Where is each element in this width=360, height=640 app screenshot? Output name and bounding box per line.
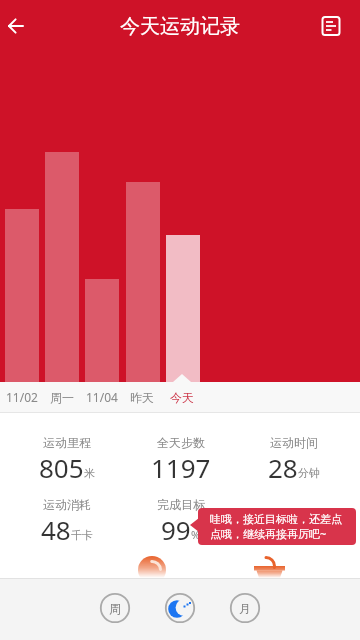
- staticText: 805: [39, 450, 84, 485]
- staticText: 11/04: [86, 389, 118, 405]
- staticText: 周: [109, 601, 121, 616]
- staticText: 今天: [170, 390, 194, 405]
- staticText: 分钟: [298, 466, 320, 480]
- staticText: 全天步数: [157, 435, 205, 450]
- staticText: 11/02: [6, 389, 38, 405]
- staticText: 48: [41, 512, 71, 547]
- button[interactable]: 11/04: [82, 382, 122, 412]
- staticText: 哇哦，接近目标啦，还差点: [210, 512, 342, 526]
- button[interactable]: 11/02: [2, 382, 42, 412]
- staticText: 点哦，继续再接再厉吧~: [210, 526, 327, 541]
- staticText: 周一: [50, 390, 74, 405]
- staticText: 今天运动记录: [120, 14, 240, 39]
- staticText: 运动消耗: [43, 497, 91, 512]
- button[interactable]: [314, 10, 348, 42]
- staticText: 昨天: [130, 390, 154, 405]
- staticText: 米: [84, 466, 95, 480]
- button[interactable]: 周: [100, 593, 130, 623]
- staticText: %: [191, 527, 201, 542]
- staticText: 运动时间: [270, 435, 318, 450]
- button[interactable]: [2, 12, 32, 40]
- button[interactable]: [165, 593, 195, 623]
- button[interactable]: 哇哦，接近目标啦，还差点: [198, 508, 356, 545]
- staticText: 千卡: [71, 528, 93, 542]
- button[interactable]: 周一: [42, 382, 82, 412]
- staticText: 运动里程: [43, 435, 91, 450]
- button[interactable]: 月: [230, 593, 260, 623]
- staticText: 1197: [151, 450, 211, 485]
- button[interactable]: 昨天: [122, 382, 162, 412]
- staticText: 月: [239, 601, 251, 616]
- staticText: 99: [161, 512, 191, 547]
- staticText: 28: [268, 450, 298, 485]
- staticText: 完成目标: [157, 497, 205, 512]
- button[interactable]: 今天: [162, 382, 202, 412]
